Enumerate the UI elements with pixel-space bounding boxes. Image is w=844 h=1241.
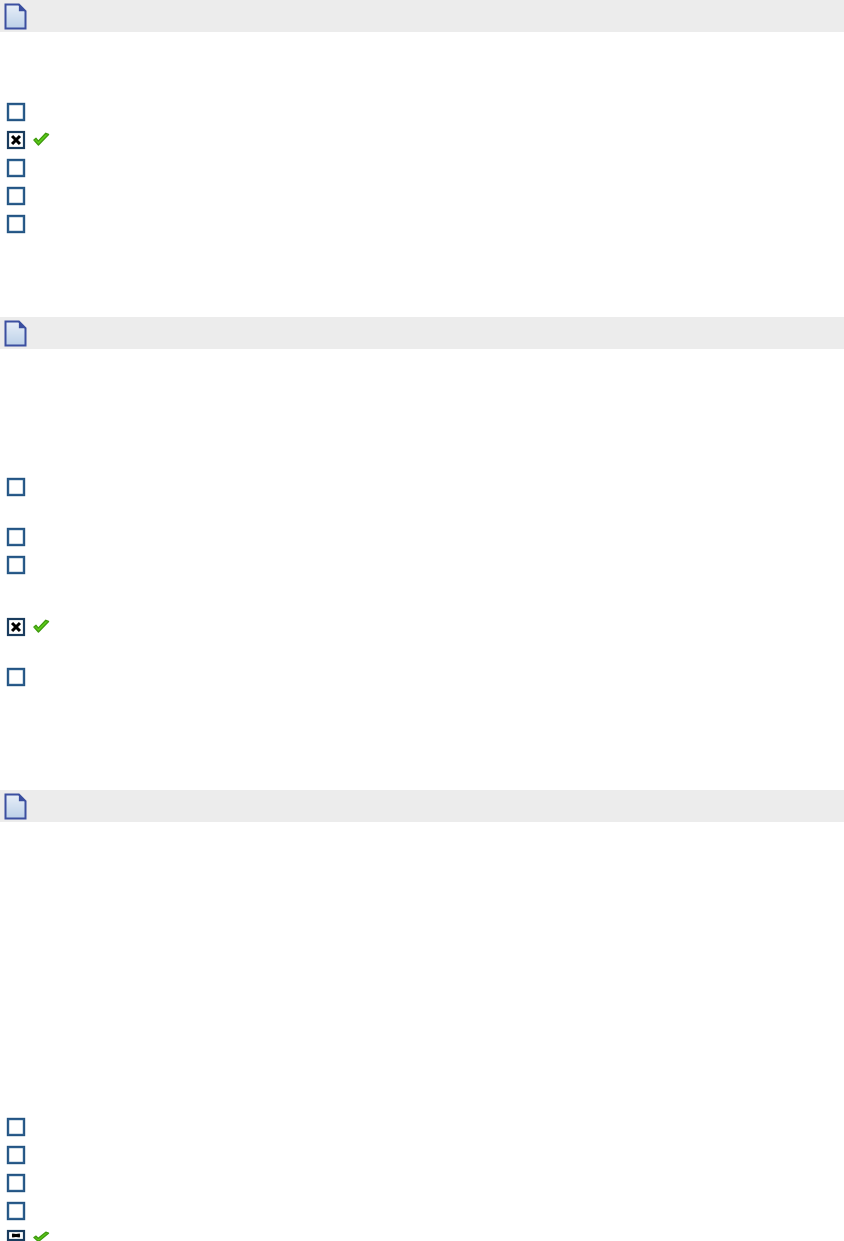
button[interactable]: Unchecked option: [7, 668, 25, 686]
button[interactable]: Unchecked option: [7, 1202, 25, 1220]
button[interactable]: [0, 0, 844, 32]
button[interactable]: Unchecked option: [7, 187, 25, 205]
button[interactable]: Unchecked option: [7, 159, 25, 177]
button[interactable]: Unchecked option: [7, 1146, 25, 1164]
button[interactable]: Unchecked option: [7, 103, 25, 121]
button[interactable]: Checked option: [7, 131, 55, 149]
button[interactable]: Unchecked option: [7, 1174, 25, 1192]
button[interactable]: [0, 317, 844, 349]
button[interactable]: [0, 790, 844, 822]
button[interactable]: Unchecked option: [7, 1118, 25, 1136]
button[interactable]: Unchecked option: [7, 478, 25, 496]
button[interactable]: Checked option: [7, 618, 55, 636]
button[interactable]: Unchecked option: [7, 556, 25, 574]
button[interactable]: Checked option: [7, 1230, 55, 1241]
button[interactable]: Unchecked option: [7, 215, 25, 233]
button[interactable]: Unchecked option: [7, 528, 25, 546]
